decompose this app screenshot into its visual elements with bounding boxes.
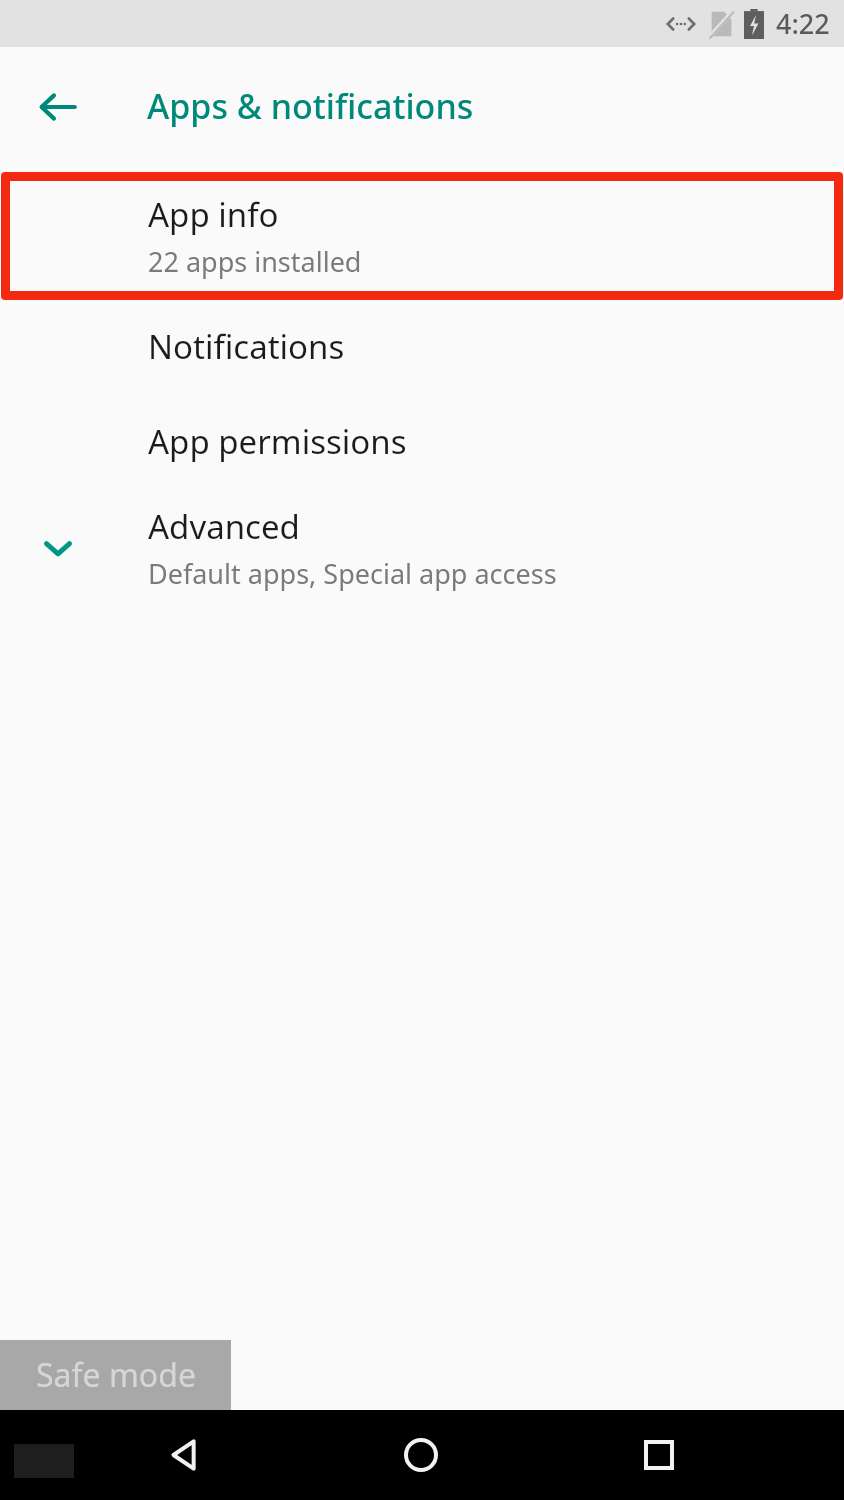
button[interactable]: Back (145, 1410, 225, 1500)
staticText: Apps & notifications (147, 83, 474, 129)
button[interactable]: App info (10, 181, 834, 291)
staticText: Advanced (148, 504, 300, 549)
button[interactable]: Recent apps (619, 1410, 699, 1500)
staticText: Safe mode (36, 1353, 196, 1397)
staticText: 22 apps installed (148, 243, 362, 280)
button[interactable]: Back (22, 71, 94, 143)
staticText: Notifications (148, 324, 345, 369)
button[interactable]: Advanced (0, 484, 844, 612)
staticText: Default apps, Special app access (148, 555, 557, 592)
button[interactable]: Notifications (0, 304, 844, 389)
button[interactable]: Home (381, 1410, 461, 1500)
staticText: App permissions (148, 419, 407, 464)
staticText: 4:22 (776, 5, 830, 42)
staticText: App info (148, 192, 279, 237)
button[interactable]: App permissions (0, 389, 844, 484)
